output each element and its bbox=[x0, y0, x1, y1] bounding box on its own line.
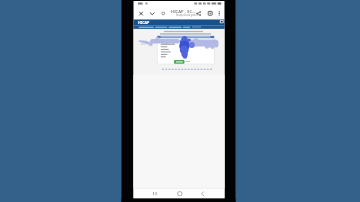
button[interactable] bbox=[216, 10, 223, 18]
button[interactable] bbox=[174, 60, 185, 64]
staticText: hicap.slucia.gob.mx bbox=[176, 13, 201, 17]
staticText: HICAP bbox=[138, 20, 150, 25]
button[interactable] bbox=[148, 189, 161, 198]
button[interactable] bbox=[148, 10, 156, 18]
button[interactable] bbox=[137, 10, 145, 18]
staticText: HICAP - SC... bbox=[171, 9, 196, 15]
button[interactable] bbox=[206, 10, 214, 18]
button[interactable] bbox=[173, 189, 186, 198]
button[interactable] bbox=[194, 10, 202, 18]
button[interactable] bbox=[221, 20, 228, 26]
button[interactable] bbox=[197, 189, 210, 198]
